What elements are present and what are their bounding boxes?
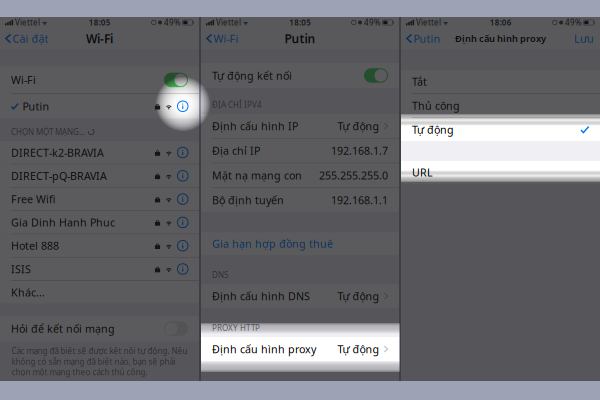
button[interactable]: DIRECT-pQ-BRAVIA <box>0 164 199 187</box>
button[interactable]: ISIS <box>0 258 199 280</box>
button[interactable]: Định cấu hình proxy <box>201 337 399 361</box>
button[interactable]: Hỏi để kết nối mạng <box>0 316 199 342</box>
button[interactable]: Mặt nạ mạng con <box>201 163 399 187</box>
button[interactable]: Tự động <box>401 118 600 141</box>
button[interactable]: Wi-Fi <box>201 28 243 49</box>
button[interactable]: Địa chỉ IP <box>201 139 399 163</box>
button[interactable]: Định cấu hình IP <box>201 114 399 138</box>
button[interactable]: URL <box>401 161 600 184</box>
button[interactable]: Gia hạn hợp đồng thuê <box>201 232 399 255</box>
button[interactable]: Định cấu hình proxy <box>201 337 399 361</box>
button[interactable]: Free Wifi <box>0 188 199 210</box>
button[interactable]: Định cấu hình DNS <box>201 284 399 308</box>
button[interactable]: Free Wifi <box>0 188 199 210</box>
button[interactable]: Hotel 888 <box>0 234 199 257</box>
button[interactable]: Putin <box>0 94 199 118</box>
button[interactable]: Tự động kết nối <box>201 63 399 88</box>
button[interactable]: Hotel 888 <box>0 234 199 257</box>
button[interactable]: Bộ định tuyến <box>201 188 399 212</box>
button[interactable]: URL <box>401 161 600 184</box>
button[interactable]: Tự động kết nối <box>201 63 399 88</box>
button[interactable]: DIRECT-pQ-BRAVIA <box>0 164 199 187</box>
button[interactable]: Tự động <box>401 118 600 141</box>
button[interactable]: Mặt nạ mạng con <box>201 163 399 187</box>
button[interactable]: DIRECT-k2-BRAVIA <box>0 141 199 164</box>
button[interactable]: Khác... <box>0 281 199 304</box>
button[interactable]: Wi-Fi <box>0 66 199 93</box>
button[interactable]: Wi-Fi <box>0 66 199 93</box>
button[interactable]: Free Wifi <box>0 188 199 210</box>
button[interactable]: Gia Dinh Hanh Phuc <box>0 211 199 234</box>
button[interactable]: Mặt nạ mạng con <box>201 163 399 187</box>
button[interactable]: Putin <box>401 28 445 49</box>
button[interactable]: Tắt <box>401 70 600 93</box>
button[interactable]: DIRECT-k2-BRAVIA <box>0 141 199 164</box>
button[interactable]: Khác... <box>0 281 199 304</box>
button[interactable]: Tắt <box>401 70 600 93</box>
button[interactable]: Putin <box>401 28 445 49</box>
button[interactable]: URL <box>401 161 600 184</box>
button[interactable]: Wi-Fi <box>0 66 199 93</box>
button[interactable]: Gia hạn hợp đồng thuê <box>201 232 399 255</box>
button[interactable]: Hỏi để kết nối mạng <box>0 316 199 342</box>
button[interactable]: Địa chỉ IP <box>201 139 399 163</box>
button[interactable]: Bộ định tuyến <box>201 188 399 212</box>
button[interactable]: Tự động kết nối <box>201 63 399 88</box>
button[interactable]: Wi-Fi <box>0 66 199 93</box>
button[interactable]: Wi-Fi <box>201 28 243 49</box>
button[interactable]: Bộ định tuyến <box>201 188 399 212</box>
button[interactable]: ISIS <box>0 258 199 280</box>
button[interactable]: Thủ công <box>401 94 600 117</box>
button[interactable]: DIRECT-k2-BRAVIA <box>0 141 199 164</box>
button[interactable]: Tắt <box>401 70 600 93</box>
button[interactable]: Gia Dinh Hanh Phuc <box>0 211 199 234</box>
button[interactable]: Tự động <box>401 118 600 141</box>
button[interactable]: Gia hạn hợp đồng thuê <box>201 232 399 255</box>
button[interactable]: Cài đặt <box>0 28 53 49</box>
button[interactable]: Lưu <box>568 28 600 49</box>
button[interactable]: Tự động <box>401 118 600 141</box>
button[interactable]: Hotel 888 <box>0 234 199 257</box>
button[interactable]: Khác... <box>0 281 199 304</box>
button[interactable]: Hỏi để kết nối mạng <box>0 316 199 342</box>
button[interactable]: Định cấu hình DNS <box>201 284 399 308</box>
button[interactable]: DIRECT-pQ-BRAVIA <box>0 164 199 187</box>
button[interactable]: Lưu <box>568 28 600 49</box>
button[interactable]: Bộ định tuyến <box>201 188 399 212</box>
button[interactable]: Định cấu hình IP <box>201 114 399 138</box>
button[interactable]: DIRECT-pQ-BRAVIA <box>0 164 199 187</box>
button[interactable]: Cài đặt <box>0 28 53 49</box>
button[interactable]: Putin <box>0 94 199 118</box>
button[interactable]: Cài đặt <box>0 28 53 49</box>
button[interactable]: Định cấu hình IP <box>201 114 399 138</box>
button[interactable]: DIRECT-k2-BRAVIA <box>0 141 199 164</box>
button[interactable]: Tắt <box>401 70 600 93</box>
button[interactable]: Free Wifi <box>0 188 199 210</box>
button[interactable]: Gia hạn hợp đồng thuê <box>201 232 399 255</box>
button[interactable]: Cài đặt <box>0 28 53 49</box>
button[interactable]: Hotel 888 <box>0 234 199 257</box>
button[interactable]: Putin <box>401 28 445 49</box>
button[interactable]: Định cấu hình proxy <box>201 337 399 361</box>
button[interactable]: Putin <box>401 28 445 49</box>
button[interactable]: Hỏi để kết nối mạng <box>0 316 199 342</box>
button[interactable]: Định cấu hình proxy <box>201 337 399 361</box>
button[interactable]: Putin <box>0 94 199 118</box>
button[interactable]: Khác... <box>0 281 199 304</box>
button[interactable]: Gia Dinh Hanh Phuc <box>0 211 199 234</box>
button[interactable]: Thủ công <box>401 94 600 117</box>
button[interactable]: Địa chỉ IP <box>201 139 399 163</box>
button[interactable]: Định cấu hình DNS <box>201 284 399 308</box>
button[interactable]: ISIS <box>0 258 199 280</box>
button[interactable]: Tự động kết nối <box>201 63 399 88</box>
button[interactable]: Định cấu hình DNS <box>201 284 399 308</box>
button[interactable]: ISIS <box>0 258 199 280</box>
button[interactable]: Thủ công <box>401 94 600 117</box>
button[interactable]: Wi-Fi <box>201 28 243 49</box>
button[interactable]: Lưu <box>568 28 600 49</box>
button[interactable]: Thủ công <box>401 94 600 117</box>
button[interactable]: Gia Dinh Hanh Phuc <box>0 211 199 234</box>
button[interactable]: Putin <box>0 94 199 118</box>
button[interactable]: Wi-Fi <box>201 28 243 49</box>
button[interactable]: Địa chỉ IP <box>201 139 399 163</box>
